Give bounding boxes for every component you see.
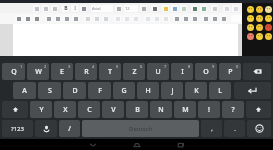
button[interactable]: A <box>13 82 36 99</box>
button[interactable]: Emoji <box>247 24 254 31</box>
button[interactable]: U <box>147 63 169 80</box>
button[interactable]: Tool <box>151 5 158 12</box>
button[interactable]: Home <box>126 139 148 150</box>
button[interactable]: Tool <box>115 5 122 12</box>
button[interactable]: Tool <box>102 15 109 22</box>
button[interactable]: Arial <box>91 5 113 12</box>
button[interactable]: ?123 <box>2 120 33 137</box>
button[interactable]: Tool <box>93 15 100 22</box>
button[interactable]: Tool <box>51 5 58 12</box>
button[interactable]: P <box>219 63 241 80</box>
button[interactable]: R <box>75 63 97 80</box>
button[interactable]: Z <box>123 63 145 80</box>
button[interactable]: H <box>137 82 159 99</box>
button[interactable]: Tool <box>72 15 79 22</box>
button[interactable]: Y <box>30 101 52 118</box>
button[interactable]: Tool <box>80 5 87 12</box>
button[interactable]: E <box>51 63 73 80</box>
button[interactable]: Tool <box>84 15 91 22</box>
button[interactable]: V <box>102 101 124 118</box>
button[interactable]: Tool <box>173 15 180 22</box>
button[interactable]: Recents <box>170 139 192 150</box>
button[interactable]: Emoji <box>256 15 263 22</box>
button[interactable]: C <box>78 101 100 118</box>
staticText: ?123 <box>11 125 24 133</box>
button[interactable]: Tool <box>45 15 52 22</box>
button[interactable]: ! <box>198 101 220 118</box>
button[interactable]: Shift <box>246 101 271 118</box>
button[interactable]: Shift <box>2 101 28 118</box>
button[interactable]: . <box>224 120 245 137</box>
button[interactable]: Tool <box>24 15 31 22</box>
button[interactable]: Tool <box>211 15 218 22</box>
button[interactable]: I <box>71 5 78 12</box>
button[interactable]: Tool <box>162 5 169 12</box>
button[interactable]: B <box>62 5 69 12</box>
button[interactable]: F <box>88 82 111 99</box>
button[interactable]: Tool <box>232 5 239 12</box>
button[interactable]: Tool <box>202 15 209 22</box>
button[interactable]: Tool <box>114 15 121 22</box>
button[interactable]: O <box>195 63 217 80</box>
button[interactable]: Q <box>2 63 25 80</box>
button[interactable]: Tool <box>171 5 178 12</box>
button[interactable]: Tool <box>211 5 218 12</box>
button[interactable]: K <box>185 82 207 99</box>
button[interactable]: Tool <box>144 15 151 22</box>
button[interactable]: B <box>126 101 148 118</box>
button[interactable]: X <box>54 101 76 118</box>
button[interactable]: Tool <box>220 15 227 22</box>
button[interactable]: Emoji <box>256 6 263 13</box>
button[interactable]: Tool <box>63 15 70 22</box>
button[interactable]: Emoji <box>256 24 263 31</box>
button[interactable]: Backspace <box>243 63 271 80</box>
button[interactable]: Enter <box>234 82 271 99</box>
button[interactable]: L <box>209 82 231 99</box>
button[interactable]: Tool <box>132 15 139 22</box>
button[interactable]: Emoji <box>247 6 254 13</box>
button[interactable]: Tool <box>191 15 198 22</box>
button[interactable]: Tool <box>54 15 61 22</box>
button[interactable]: Tool <box>223 5 230 12</box>
button[interactable]: Tool <box>182 15 189 22</box>
button[interactable]: Tool <box>15 15 22 22</box>
button[interactable]: Emoji <box>265 6 272 13</box>
button[interactable]: , <box>201 120 222 137</box>
button[interactable]: Emoji <box>265 33 272 40</box>
button[interactable]: I <box>171 63 193 80</box>
button[interactable]: Tool <box>200 5 207 12</box>
button[interactable]: Emoji <box>256 33 263 40</box>
button[interactable]: Tool <box>180 5 187 12</box>
button[interactable]: Emoji <box>247 15 254 22</box>
button[interactable]: Space <box>82 120 199 137</box>
button[interactable]: Voice input <box>35 120 57 137</box>
button[interactable]: Tool <box>123 15 130 22</box>
button[interactable]: T <box>99 63 121 80</box>
button[interactable]: Tool <box>33 15 40 22</box>
button[interactable]: Tool <box>42 5 49 12</box>
button[interactable]: Emoji <box>265 15 272 22</box>
button[interactable]: Tool <box>153 15 160 22</box>
button[interactable]: Tool <box>140 5 147 12</box>
button[interactable]: Emoji <box>265 24 272 31</box>
staticText: 12 <box>125 6 130 11</box>
button[interactable]: N <box>150 101 172 118</box>
button[interactable]: Hide keyboard <box>82 139 104 150</box>
button[interactable]: G <box>113 82 135 99</box>
button[interactable]: M <box>174 101 196 118</box>
button[interactable]: 12 <box>124 5 138 12</box>
button[interactable]: D <box>63 82 86 99</box>
button[interactable]: W <box>27 63 49 80</box>
button[interactable]: / <box>59 120 80 137</box>
button[interactable]: Emoji <box>247 33 254 40</box>
button[interactable]: Tool <box>162 15 169 22</box>
button[interactable]: S <box>38 82 61 99</box>
staticText: H <box>145 86 151 96</box>
button[interactable]: J <box>161 82 183 99</box>
button[interactable]: ? <box>222 101 244 118</box>
button[interactable]: Tool <box>33 5 40 12</box>
button[interactable]: Tool <box>191 5 198 12</box>
button[interactable]: Emoji <box>247 120 271 137</box>
staticText: U <box>155 67 161 77</box>
